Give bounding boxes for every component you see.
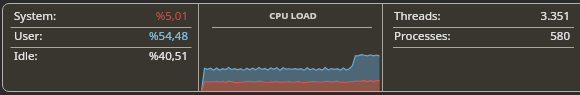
button[interactable]: CPU LOAD	[199, 6, 383, 26]
button[interactable]: Idle:	[3, 46, 198, 66]
staticText: CPU LOAD	[201, 9, 385, 29]
button[interactable]: User:	[3, 26, 198, 46]
staticText: Threads:	[394, 8, 441, 24]
staticText: User:	[14, 28, 43, 44]
staticText: Idle:	[14, 48, 38, 64]
staticText: 3.351	[373, 8, 570, 24]
staticText: %54,48	[0, 28, 188, 44]
staticText: System:	[14, 8, 57, 24]
button[interactable]: System:	[3, 6, 198, 26]
button[interactable]: Threads:	[383, 6, 580, 26]
staticText: 580	[373, 28, 570, 44]
staticText: %5,01	[0, 8, 188, 24]
staticText: Processes:	[394, 28, 451, 44]
staticText: %40,51	[0, 48, 188, 64]
button[interactable]: Processes:	[383, 26, 580, 46]
